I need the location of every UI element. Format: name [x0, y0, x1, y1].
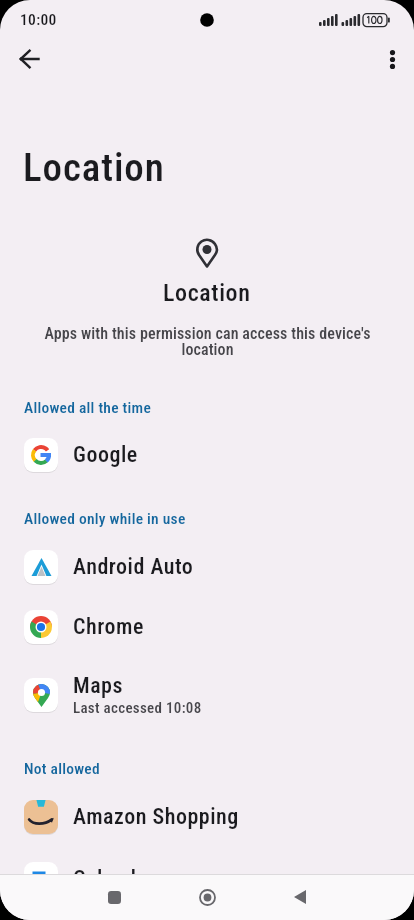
button[interactable]: Chrome [0, 597, 414, 657]
staticText: Last accessed 10:08 [73, 699, 202, 717]
staticText: Location [23, 145, 165, 191]
staticText: Amazon Shopping [73, 804, 239, 830]
button[interactable] [279, 876, 321, 918]
button[interactable]: Maps [0, 661, 414, 729]
staticText: 10:00 [20, 11, 57, 29]
button[interactable] [8, 38, 50, 80]
staticText: Chrome [73, 614, 144, 640]
staticText: Apps with this permission can access thi… [44, 324, 371, 359]
staticText: Android Auto [73, 554, 194, 580]
button[interactable] [371, 38, 413, 80]
staticText: Calendar [73, 866, 155, 892]
staticText: Location [163, 279, 251, 307]
button[interactable] [186, 876, 228, 918]
button[interactable]: Android Auto [0, 537, 414, 597]
staticText: Not allowed [24, 760, 100, 778]
staticText: Maps [73, 673, 123, 699]
button[interactable] [93, 876, 135, 918]
button[interactable]: Google [0, 425, 414, 485]
staticText: Allowed only while in use [24, 510, 186, 528]
staticText: Allowed all the time [24, 399, 152, 417]
staticText: Google [73, 442, 138, 468]
button[interactable]: Calendar [0, 849, 414, 909]
button[interactable]: Amazon Shopping [0, 787, 414, 847]
